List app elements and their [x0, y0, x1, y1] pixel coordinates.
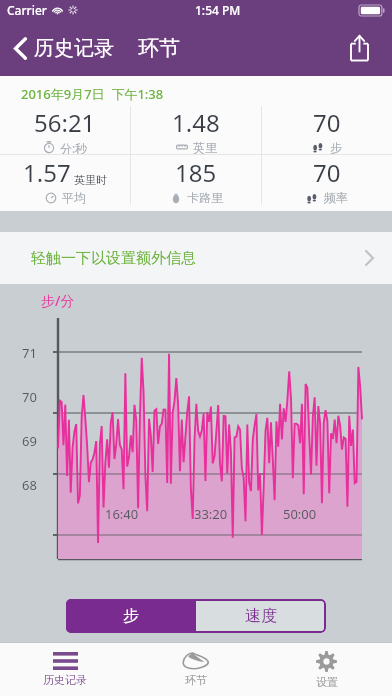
staticText: 平均: [62, 190, 86, 205]
staticText: 70: [22, 388, 37, 406]
button[interactable]: 56:21: [0, 106, 130, 154]
staticText: 卡路里: [187, 190, 223, 205]
staticText: 2016年9月7日 下午1:38: [21, 85, 164, 103]
staticText: 1:54 PM: [195, 2, 241, 18]
button[interactable]: 1.57: [0, 155, 130, 205]
staticText: 185: [175, 156, 217, 189]
staticText: 70: [313, 156, 341, 189]
staticText: 16:40: [105, 505, 139, 523]
staticText: 速度: [245, 606, 277, 626]
button[interactable]: 设置: [261, 643, 392, 696]
staticText: 环节: [185, 673, 207, 687]
staticText: Carrier: [7, 2, 47, 18]
staticText: 70: [313, 106, 341, 139]
staticText: 英里时: [74, 173, 107, 187]
button[interactable]: Share: [338, 27, 380, 69]
button[interactable]: 步: [66, 599, 196, 633]
staticText: 1.48: [172, 106, 220, 139]
staticText: 环节: [138, 35, 180, 61]
button[interactable]: 1.48: [131, 106, 261, 154]
button[interactable]: 轻触一下以设置额外信息: [0, 232, 392, 284]
button[interactable]: 历史记录: [0, 643, 130, 696]
staticText: 步/分: [41, 291, 75, 310]
staticText: 频率: [324, 190, 348, 205]
staticText: 分:秒: [60, 140, 88, 154]
staticText: 56:21: [34, 106, 96, 139]
staticText: 步: [123, 606, 139, 626]
staticText: 1.57: [23, 156, 71, 189]
staticText: 69: [22, 432, 37, 450]
staticText: 71: [22, 344, 37, 362]
staticText: 68: [22, 476, 37, 494]
button[interactable]: 环节: [130, 643, 261, 696]
staticText: 33:20: [194, 505, 228, 523]
staticText: 历史记录: [34, 36, 114, 61]
staticText: 历史记录: [43, 673, 87, 687]
button[interactable]: 历史记录: [10, 30, 118, 67]
button[interactable]: 速度: [196, 599, 326, 633]
staticText: 步: [330, 140, 342, 154]
staticText: 轻触一下以设置额外信息: [31, 249, 196, 268]
staticText: 设置: [316, 675, 338, 689]
button[interactable]: 70: [262, 106, 392, 154]
button[interactable]: 70: [262, 155, 392, 205]
staticText: 50:00: [283, 505, 317, 523]
staticText: 英里: [193, 140, 217, 154]
button[interactable]: 185: [131, 155, 261, 205]
